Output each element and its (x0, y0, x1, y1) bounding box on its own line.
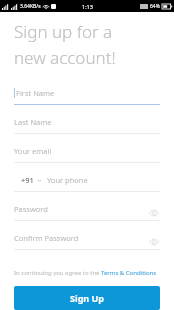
staticText: +91 (21, 175, 34, 185)
staticText: Your email (14, 146, 52, 156)
staticText: Your phone (47, 175, 88, 185)
button[interactable]: Last Name (14, 114, 160, 143)
button[interactable]: Password (14, 201, 160, 230)
staticText: Sign up for a (14, 20, 113, 43)
staticText: In continuing you agree to the Terms & C… (14, 269, 157, 277)
button[interactable]: +91 (14, 172, 160, 201)
staticText: 64% (150, 3, 160, 10)
button[interactable]: Toggle password visibility (148, 236, 160, 248)
staticText: Confirm Password (14, 233, 79, 243)
button[interactable]: First Name (14, 85, 160, 114)
staticText: Last Name (14, 117, 52, 127)
staticText: 3.64KB/s (20, 3, 41, 10)
button[interactable]: Your email (14, 143, 160, 172)
button[interactable]: Confirm Password (14, 230, 160, 259)
button[interactable]: Toggle password visibility (148, 207, 160, 219)
staticText: First Name (16, 88, 55, 98)
staticText: new account! (14, 46, 116, 69)
staticText: Sign Up (70, 292, 105, 304)
staticText: Password (14, 204, 48, 214)
button[interactable]: Sign Up (14, 286, 160, 310)
staticText: 1:13 (82, 3, 93, 10)
